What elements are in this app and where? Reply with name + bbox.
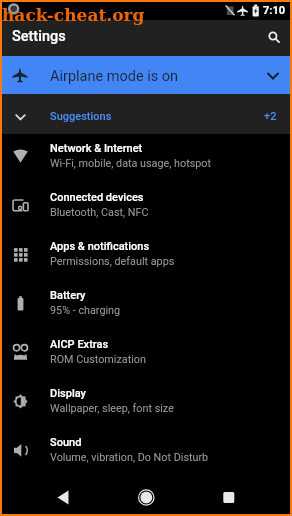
staticText: Sound <box>50 436 82 449</box>
staticText: Wi-Fi, mobile, data usage, hotspot <box>50 157 212 170</box>
button[interactable] <box>256 20 292 56</box>
button[interactable]: Sound <box>0 428 292 477</box>
staticText: Settings <box>12 28 66 45</box>
staticText: Permissions, default apps <box>50 255 175 268</box>
staticText: Bluetooth, Cast, NFC <box>50 206 149 219</box>
button[interactable]: Apps & notifications <box>0 232 292 281</box>
staticText: Connected devices <box>50 191 144 204</box>
staticText: hack-cheat.org <box>2 5 145 25</box>
staticText: Suggestions <box>50 110 112 123</box>
staticText: +2 <box>264 110 277 123</box>
button[interactable] <box>98 481 195 516</box>
button[interactable]: Display <box>0 379 292 428</box>
button[interactable]: AICP Extras <box>0 330 292 379</box>
staticText: Airplane mode is on <box>50 68 179 85</box>
button[interactable]: Airplane mode is on <box>0 56 292 94</box>
button[interactable] <box>195 481 292 516</box>
staticText: Battery <box>50 289 86 302</box>
staticText: 7:10 <box>263 4 286 17</box>
staticText: Display <box>50 387 86 400</box>
button[interactable]: Suggestions <box>0 94 292 134</box>
button[interactable]: Network & Internet <box>0 134 292 183</box>
staticText: Apps & notifications <box>50 240 150 253</box>
staticText: 95% - charging <box>50 304 121 317</box>
staticText: Volume, vibration, Do Not Disturb <box>50 451 209 464</box>
staticText: Network & Internet <box>50 142 143 155</box>
button[interactable]: Connected devices <box>0 183 292 232</box>
button[interactable] <box>0 481 98 516</box>
staticText: Wallpaper, sleep, font size <box>50 402 174 415</box>
staticText: AICP Extras <box>50 338 109 351</box>
button[interactable]: Battery <box>0 281 292 330</box>
staticText: ROM Customization <box>50 353 146 366</box>
